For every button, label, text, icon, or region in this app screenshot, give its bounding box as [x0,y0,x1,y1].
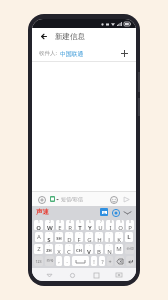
staticText: W [47,224,53,230]
button[interactable]: Split screen [113,269,125,281]
staticText: ? [101,258,104,265]
button[interactable]: · [75,232,83,242]
button[interactable]: + [107,256,113,266]
staticText: A [37,233,41,241]
button[interactable]: Z [34,244,43,254]
button[interactable]: · [115,232,123,242]
staticText: M [116,245,122,253]
button[interactable]: Send [121,194,132,205]
button[interactable]: · [55,232,63,242]
button[interactable]: 符号 [45,256,54,266]
staticText: C [67,248,71,254]
staticText: L [127,233,131,241]
button[interactable]: ? [99,256,105,266]
button[interactable]: Keyboard layout [100,208,108,216]
staticText: 中国联通 [60,50,84,57]
staticText: 6 [89,220,91,224]
staticText: · [99,244,100,248]
staticText: S [47,236,51,242]
button[interactable]: · [105,244,113,254]
button[interactable]: · [85,244,93,254]
staticText: Z [37,245,41,253]
button[interactable]: 6 [86,220,94,230]
staticText: · [49,244,50,248]
button[interactable]: 9 [116,220,124,230]
staticText: I [109,224,112,230]
button[interactable]: 声速 [36,208,49,216]
staticText: · [59,232,60,236]
staticText: Y [88,224,92,230]
button[interactable]: ! [91,256,97,266]
staticText: CH [76,248,82,254]
button[interactable]: A [35,232,43,242]
button[interactable]: . [64,256,70,266]
staticText: 声速 [36,208,49,216]
button[interactable]: Back [38,30,51,43]
button[interactable]: Settings [111,208,120,217]
button[interactable]: Back [43,269,55,281]
staticText: O [118,224,123,230]
button[interactable]: Recents [90,269,102,281]
button[interactable]: Enter [126,256,134,266]
button[interactable]: Add attachment [36,194,47,205]
staticText: · [109,232,110,236]
button[interactable]: 分词 [125,244,134,254]
button[interactable]: · [95,232,103,242]
button[interactable]: · [55,244,63,254]
staticText: · [89,244,90,248]
staticText: . [66,257,68,265]
staticText: 3 [59,220,61,224]
button[interactable]: Space [72,256,89,266]
staticText: 8 [110,220,112,224]
button[interactable]: · [75,244,83,254]
staticText: N [107,248,112,254]
button[interactable]: · [65,232,73,242]
staticText: J [108,236,110,242]
staticText: 2 [49,220,51,224]
staticText: 0 [129,220,131,224]
staticText: · [49,232,50,236]
button[interactable]: Home [66,269,78,281]
staticText: 5 [79,220,81,224]
staticText: T [78,224,82,230]
button[interactable]: 8 [106,220,114,230]
staticText: V [87,248,91,254]
button[interactable]: L [125,232,133,242]
staticText: 符号 [46,259,54,264]
button[interactable]: Hide keyboard [123,208,132,217]
button[interactable]: · [85,232,93,242]
staticText: · [109,244,110,248]
button[interactable]: , [56,256,62,266]
button[interactable]: 7 [96,220,104,230]
button[interactable]: 2 [45,220,54,230]
staticText: H [97,236,102,242]
button[interactable]: Backspace [115,256,124,266]
button[interactable]: 5 [76,220,84,230]
button[interactable]: Add contact [119,48,130,59]
staticText: 9 [120,220,122,224]
button[interactable]: 1 [34,220,43,230]
button[interactable]: Emoji [108,194,119,205]
button[interactable]: 中国联通 [60,50,84,57]
staticText: U [98,224,103,230]
button[interactable]: · [45,244,53,254]
button[interactable]: · [105,232,113,242]
button[interactable]: 3 [56,220,64,230]
staticText: K [117,236,121,242]
staticText: · [119,232,120,236]
staticText: · [69,232,70,236]
button[interactable]: · [65,244,73,254]
staticText: F [77,236,81,242]
staticText: B [97,248,101,254]
staticText: SH [56,236,62,242]
button[interactable]: 123 [34,256,43,266]
staticText: 7 [100,220,102,224]
staticText: Q [36,224,41,230]
button[interactable]: 4 [66,220,74,230]
button[interactable]: 0 [126,220,134,230]
button[interactable]: · [45,232,53,242]
button[interactable]: M [115,244,123,254]
staticText: D [67,236,72,242]
staticText: , [58,257,60,265]
button[interactable]: · [95,244,103,254]
